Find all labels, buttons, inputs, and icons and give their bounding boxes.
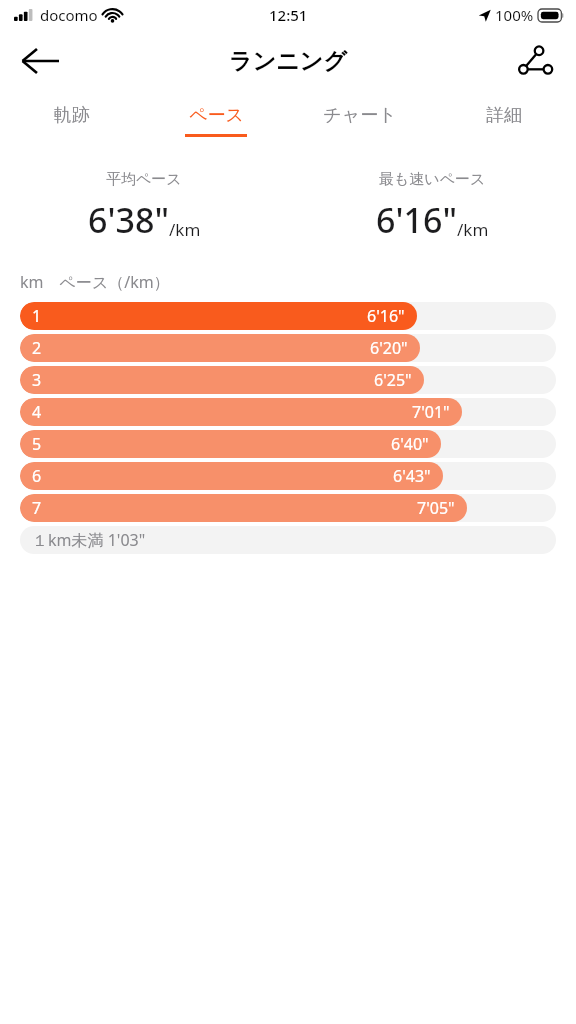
staticText: 1 — [32, 305, 42, 327]
staticText: ペース — [189, 104, 244, 127]
staticText: 3 — [32, 369, 42, 391]
button[interactable]: 1 — [20, 302, 556, 330]
button[interactable]: １km未満 1'03" — [20, 526, 556, 554]
staticText: １km未満 1'03" — [32, 529, 146, 551]
staticText: 軌跡 — [54, 104, 90, 127]
button[interactable]: チャート — [288, 92, 432, 148]
staticText: 6'20" — [370, 337, 408, 359]
staticText: 詳細 — [486, 104, 522, 127]
staticText: 6 — [32, 465, 42, 487]
button[interactable]: 7 — [20, 494, 556, 522]
staticText: ランニング — [229, 47, 347, 76]
staticText: 6'43" — [393, 465, 431, 487]
button[interactable]: ペース — [144, 92, 288, 148]
staticText: 4 — [32, 401, 42, 423]
staticText: 6'16" — [376, 197, 457, 243]
staticText: 6'25" — [374, 369, 412, 391]
staticText: 7'01" — [412, 401, 450, 423]
staticText: 6'40" — [391, 433, 429, 455]
button[interactable]: Share — [510, 35, 562, 87]
staticText: docomo — [40, 5, 98, 25]
staticText: 最も速いペース — [379, 170, 486, 189]
button[interactable]: 2 — [20, 334, 556, 362]
staticText: 12:51 — [269, 5, 308, 25]
button[interactable]: 3 — [20, 366, 556, 394]
staticText: 7 — [32, 497, 42, 519]
staticText: 2 — [32, 337, 42, 359]
staticText: チャート — [323, 104, 397, 127]
staticText: 平均ペース — [106, 170, 182, 189]
button[interactable]: 4 — [20, 398, 556, 426]
button[interactable]: 6 — [20, 462, 556, 490]
button[interactable]: 軌跡 — [0, 92, 144, 148]
staticText: /km — [457, 218, 489, 241]
staticText: 7'05" — [417, 497, 455, 519]
button[interactable]: 5 — [20, 430, 556, 458]
staticText: km ペース（/km） — [20, 271, 170, 293]
staticText: 6'38" — [88, 197, 169, 243]
staticText: 6'16" — [367, 305, 405, 327]
button[interactable]: 詳細 — [432, 92, 576, 148]
button[interactable]: Back — [14, 35, 66, 87]
staticText: /km — [169, 218, 201, 241]
staticText: 100% — [495, 5, 534, 25]
staticText: 5 — [32, 433, 42, 455]
